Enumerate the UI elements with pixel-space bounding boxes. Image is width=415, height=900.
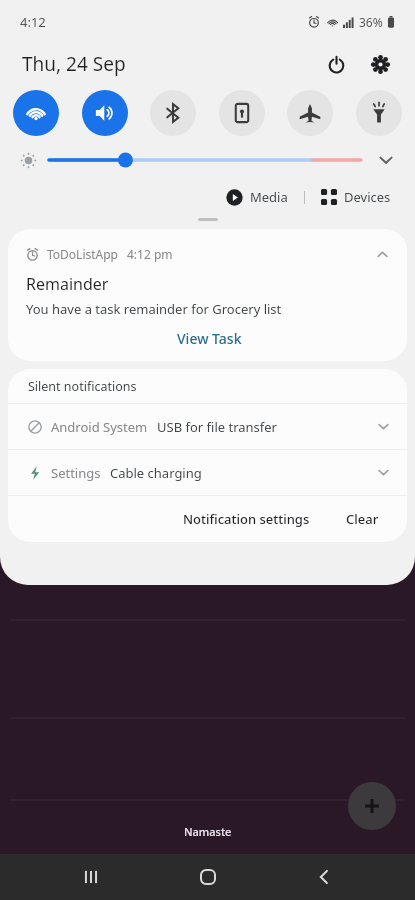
staticText: Notification settings	[183, 510, 310, 528]
staticText: Clear	[346, 510, 379, 528]
button[interactable]: Collapse	[371, 243, 393, 265]
button[interactable]: Clear	[340, 506, 385, 532]
staticText: Android System	[51, 418, 148, 436]
button[interactable]: Settings	[363, 47, 397, 81]
staticText: 36%	[359, 14, 383, 30]
button[interactable]: Settings	[8, 450, 407, 495]
staticText: 4:12 pm	[127, 246, 173, 262]
staticText: Cable charging	[110, 464, 202, 482]
button[interactable]: Notification settings	[177, 506, 316, 532]
button[interactable]: Add task	[348, 782, 396, 830]
staticText: 4:12	[20, 13, 46, 31]
staticText: Media	[250, 188, 288, 206]
staticText: USB for file transfer	[157, 418, 277, 436]
staticText: Remainder	[26, 273, 109, 295]
button[interactable]: Recents	[65, 854, 117, 900]
button[interactable]: ToDoListApp	[8, 229, 407, 361]
staticText: Thu, 24 Sep	[22, 51, 126, 77]
staticText: ToDoListApp	[47, 246, 119, 262]
button[interactable]: Sound	[82, 90, 128, 136]
staticText: You have a task remainder for Grocery li…	[26, 300, 282, 318]
button[interactable]: Flashlight	[356, 90, 402, 136]
button[interactable]: Expand	[373, 147, 399, 173]
staticText: Namaste	[184, 824, 232, 839]
staticText: Silent notifications	[28, 378, 137, 395]
button[interactable]: Media	[222, 184, 292, 210]
button[interactable]	[49, 150, 361, 170]
button[interactable]: Power	[319, 47, 353, 81]
button[interactable]: Android System	[8, 404, 407, 449]
staticText: Settings	[51, 464, 101, 482]
button[interactable]: Home	[182, 854, 234, 900]
staticText: Devices	[344, 188, 391, 206]
button[interactable]: Back	[298, 854, 350, 900]
button[interactable]: Airplane mode	[287, 90, 333, 136]
button[interactable]: Screen lock	[219, 90, 265, 136]
staticText: View Task	[177, 329, 242, 348]
button[interactable]: View Task	[165, 326, 254, 351]
button[interactable]: Devices	[317, 184, 395, 210]
button[interactable]: Wi-Fi	[13, 90, 59, 136]
button[interactable]: Bluetooth	[150, 90, 196, 136]
